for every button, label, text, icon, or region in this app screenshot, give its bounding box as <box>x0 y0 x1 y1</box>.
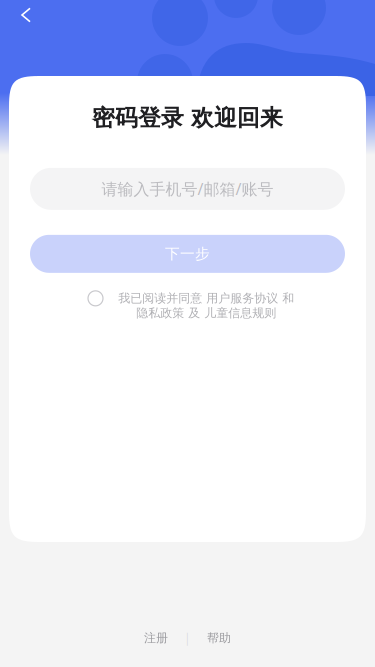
staticText: 我已阅读并同意 用户服务协议 和 隐私政策 及 儿童信息规则 <box>118 291 294 320</box>
button[interactable]: 下一步 <box>30 235 345 273</box>
staticText: 请输入手机号/邮箱/账号 <box>101 178 273 199</box>
button[interactable]: Agree to terms <box>88 291 103 306</box>
staticText: 密码登录 欢迎回来 <box>92 104 283 132</box>
staticText: 下一步 <box>165 245 210 263</box>
button[interactable]: 注册 <box>144 631 168 645</box>
staticText: 帮助 <box>207 631 231 645</box>
staticText: | <box>184 630 191 646</box>
staticText: 注册 <box>144 631 168 645</box>
button[interactable]: 帮助 <box>207 631 231 645</box>
button[interactable]: Back <box>9 0 43 30</box>
